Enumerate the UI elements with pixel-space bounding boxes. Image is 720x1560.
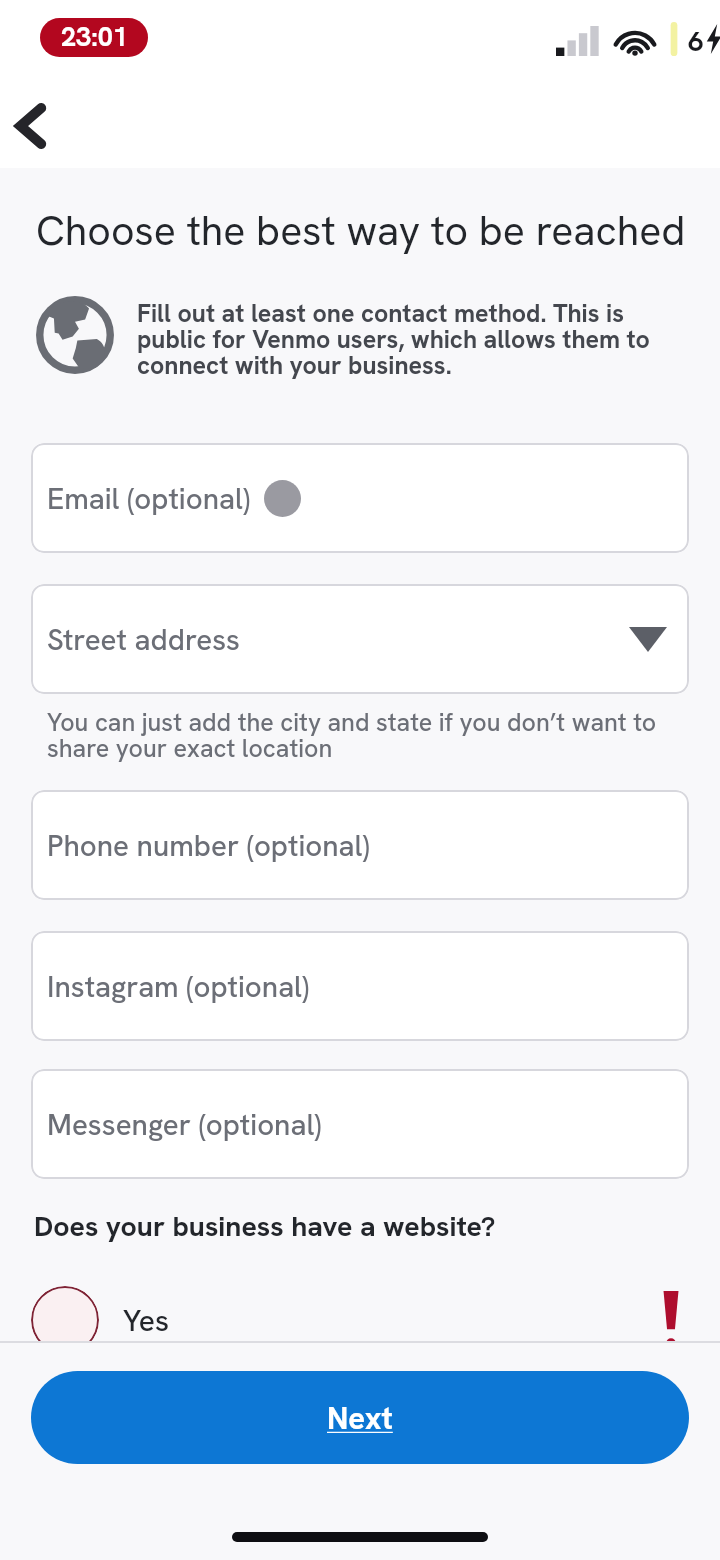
staticText: 6 xyxy=(688,23,704,59)
staticText: Phone number (optional) xyxy=(47,826,370,864)
button[interactable]: Instagram (optional) xyxy=(31,931,689,1041)
button[interactable]: Street address xyxy=(31,584,689,694)
button[interactable]: Messenger (optional) xyxy=(31,1069,689,1179)
button[interactable]: Back xyxy=(2,98,58,154)
staticText: 23:01 xyxy=(61,19,128,54)
button[interactable]: Phone number (optional) xyxy=(31,790,689,900)
button[interactable]: Next xyxy=(31,1371,689,1464)
staticText: Fill out at least one contact method. Th… xyxy=(137,297,661,382)
staticText: Choose the best way to be reached xyxy=(36,204,686,257)
staticText: Does your business have a website? xyxy=(34,1207,496,1244)
staticText: Street address xyxy=(47,620,240,658)
staticText: Yes xyxy=(123,1301,170,1340)
staticText: Instagram (optional) xyxy=(47,967,310,1005)
staticText: Messenger (optional) xyxy=(47,1105,322,1143)
button[interactable]: Email (optional) xyxy=(31,443,689,553)
staticText: Next xyxy=(327,1398,393,1438)
staticText: You can just add the city and state if y… xyxy=(47,706,667,765)
staticText: Email (optional) xyxy=(47,479,250,517)
button[interactable]: Yes xyxy=(0,1280,720,1360)
